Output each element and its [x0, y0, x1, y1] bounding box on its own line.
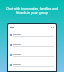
button[interactable] — [8, 40, 56, 50]
button[interactable] — [8, 60, 56, 70]
button[interactable] — [8, 50, 56, 60]
button[interactable] — [8, 30, 56, 40]
staticText: Chat with teammates, families and friend… — [2, 7, 62, 15]
